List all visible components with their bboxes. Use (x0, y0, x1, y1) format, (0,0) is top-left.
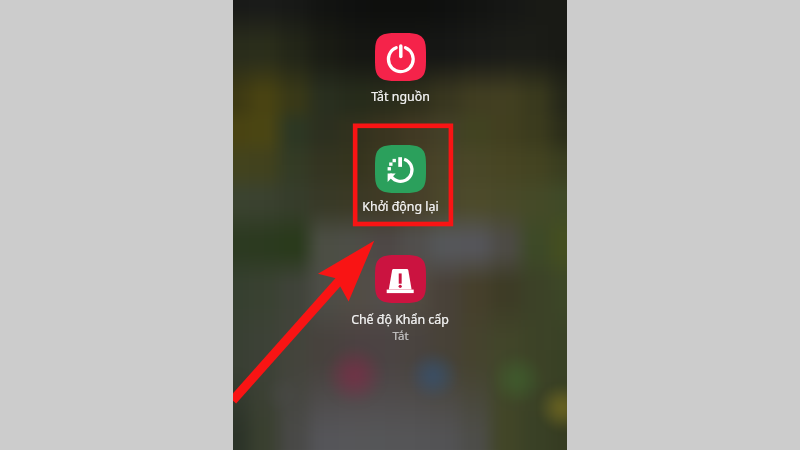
button[interactable]: Tắt nguồn (375, 33, 426, 81)
staticText: Tắt nguồn (371, 88, 430, 105)
button[interactable]: Chế độ Khẩn cấp (375, 255, 426, 303)
button[interactable]: Khởi động lại (375, 145, 426, 193)
staticText: Khởi động lại (362, 198, 439, 215)
staticText: Chế độ Khẩn cấp (351, 311, 449, 328)
staticText: Tắt (392, 328, 409, 344)
